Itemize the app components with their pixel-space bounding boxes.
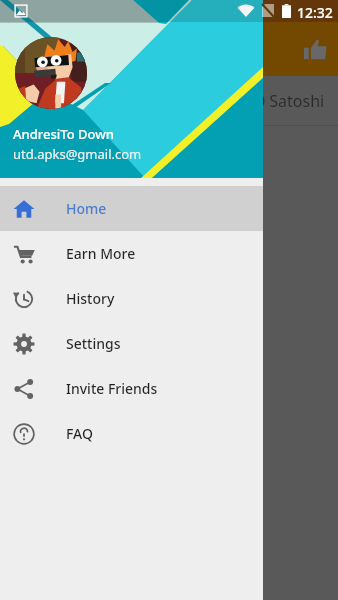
button[interactable]: Home xyxy=(0,186,263,231)
staticText: Invite Friends xyxy=(66,379,158,398)
staticText: Earn More xyxy=(66,244,136,263)
button[interactable]: Settings xyxy=(0,321,263,366)
button[interactable]: Invite Friends xyxy=(0,366,263,411)
button[interactable]: History xyxy=(0,276,263,321)
staticText: 0 Satoshi xyxy=(256,90,325,112)
button[interactable]: FAQ xyxy=(0,411,263,456)
staticText: AndresiTo Down xyxy=(13,125,114,143)
staticText: Home xyxy=(66,199,107,218)
staticText: Settings xyxy=(66,334,121,353)
staticText: History xyxy=(66,289,115,308)
staticText: FAQ xyxy=(66,424,93,443)
button[interactable]: Earn More xyxy=(0,231,263,276)
staticText: utd.apks@gmail.com xyxy=(13,145,142,163)
button[interactable]: Like xyxy=(298,32,332,66)
staticText: 12:32 xyxy=(297,3,333,22)
